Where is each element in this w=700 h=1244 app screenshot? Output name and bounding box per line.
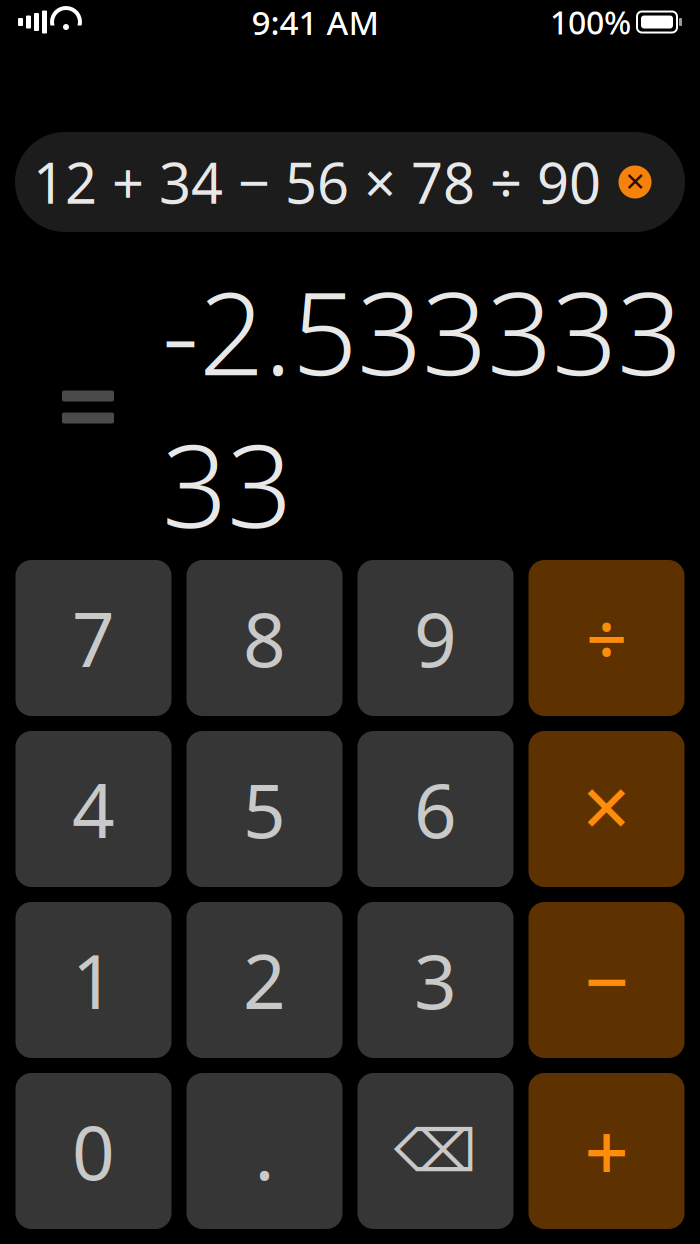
staticText: ⌫ xyxy=(394,1118,477,1184)
staticText: 0 xyxy=(72,1101,115,1201)
button[interactable]: 5 xyxy=(186,731,342,887)
button[interactable]: 4 xyxy=(15,731,171,887)
button[interactable]: 2 xyxy=(186,902,342,1058)
button[interactable]: Delete xyxy=(357,1073,513,1229)
staticText: 5 xyxy=(243,759,286,859)
staticText: 4 xyxy=(72,759,115,859)
button[interactable]: + xyxy=(528,1073,684,1229)
staticText: 3 xyxy=(414,930,457,1030)
staticText: . xyxy=(254,1101,274,1201)
button[interactable]: 1 xyxy=(15,902,171,1058)
button[interactable]: 8 xyxy=(186,560,342,716)
staticText: 100% xyxy=(550,1,631,43)
button[interactable]: 6 xyxy=(357,731,513,887)
staticText: 12 + 34 − 56 × 78 ÷ 90 xyxy=(33,145,601,219)
staticText: ✕ xyxy=(624,168,645,196)
button[interactable]: 3 xyxy=(357,902,513,1058)
button[interactable]: ÷ xyxy=(528,560,684,716)
staticText: 8 xyxy=(243,588,286,688)
button[interactable]: Clear xyxy=(615,162,655,202)
staticText: -2.53333333 xyxy=(162,255,682,559)
staticText: 9 xyxy=(414,588,457,688)
button[interactable]: 9 xyxy=(357,560,513,716)
button[interactable]: − xyxy=(528,902,684,1058)
staticText: ÷ xyxy=(586,590,627,686)
button[interactable]: 7 xyxy=(15,560,171,716)
button[interactable]: 0 xyxy=(15,1073,171,1229)
staticText: 2 xyxy=(243,930,286,1030)
staticText: 7 xyxy=(72,588,115,688)
staticText: 1 xyxy=(72,930,115,1030)
staticText: − xyxy=(584,929,628,1031)
staticText: + xyxy=(584,1100,628,1202)
staticText: 6 xyxy=(414,759,457,859)
button[interactable]: . xyxy=(186,1073,342,1229)
staticText: ✕ xyxy=(579,773,633,845)
staticText: 9:41 AM xyxy=(251,0,379,44)
button[interactable]: ✕ xyxy=(528,731,684,887)
